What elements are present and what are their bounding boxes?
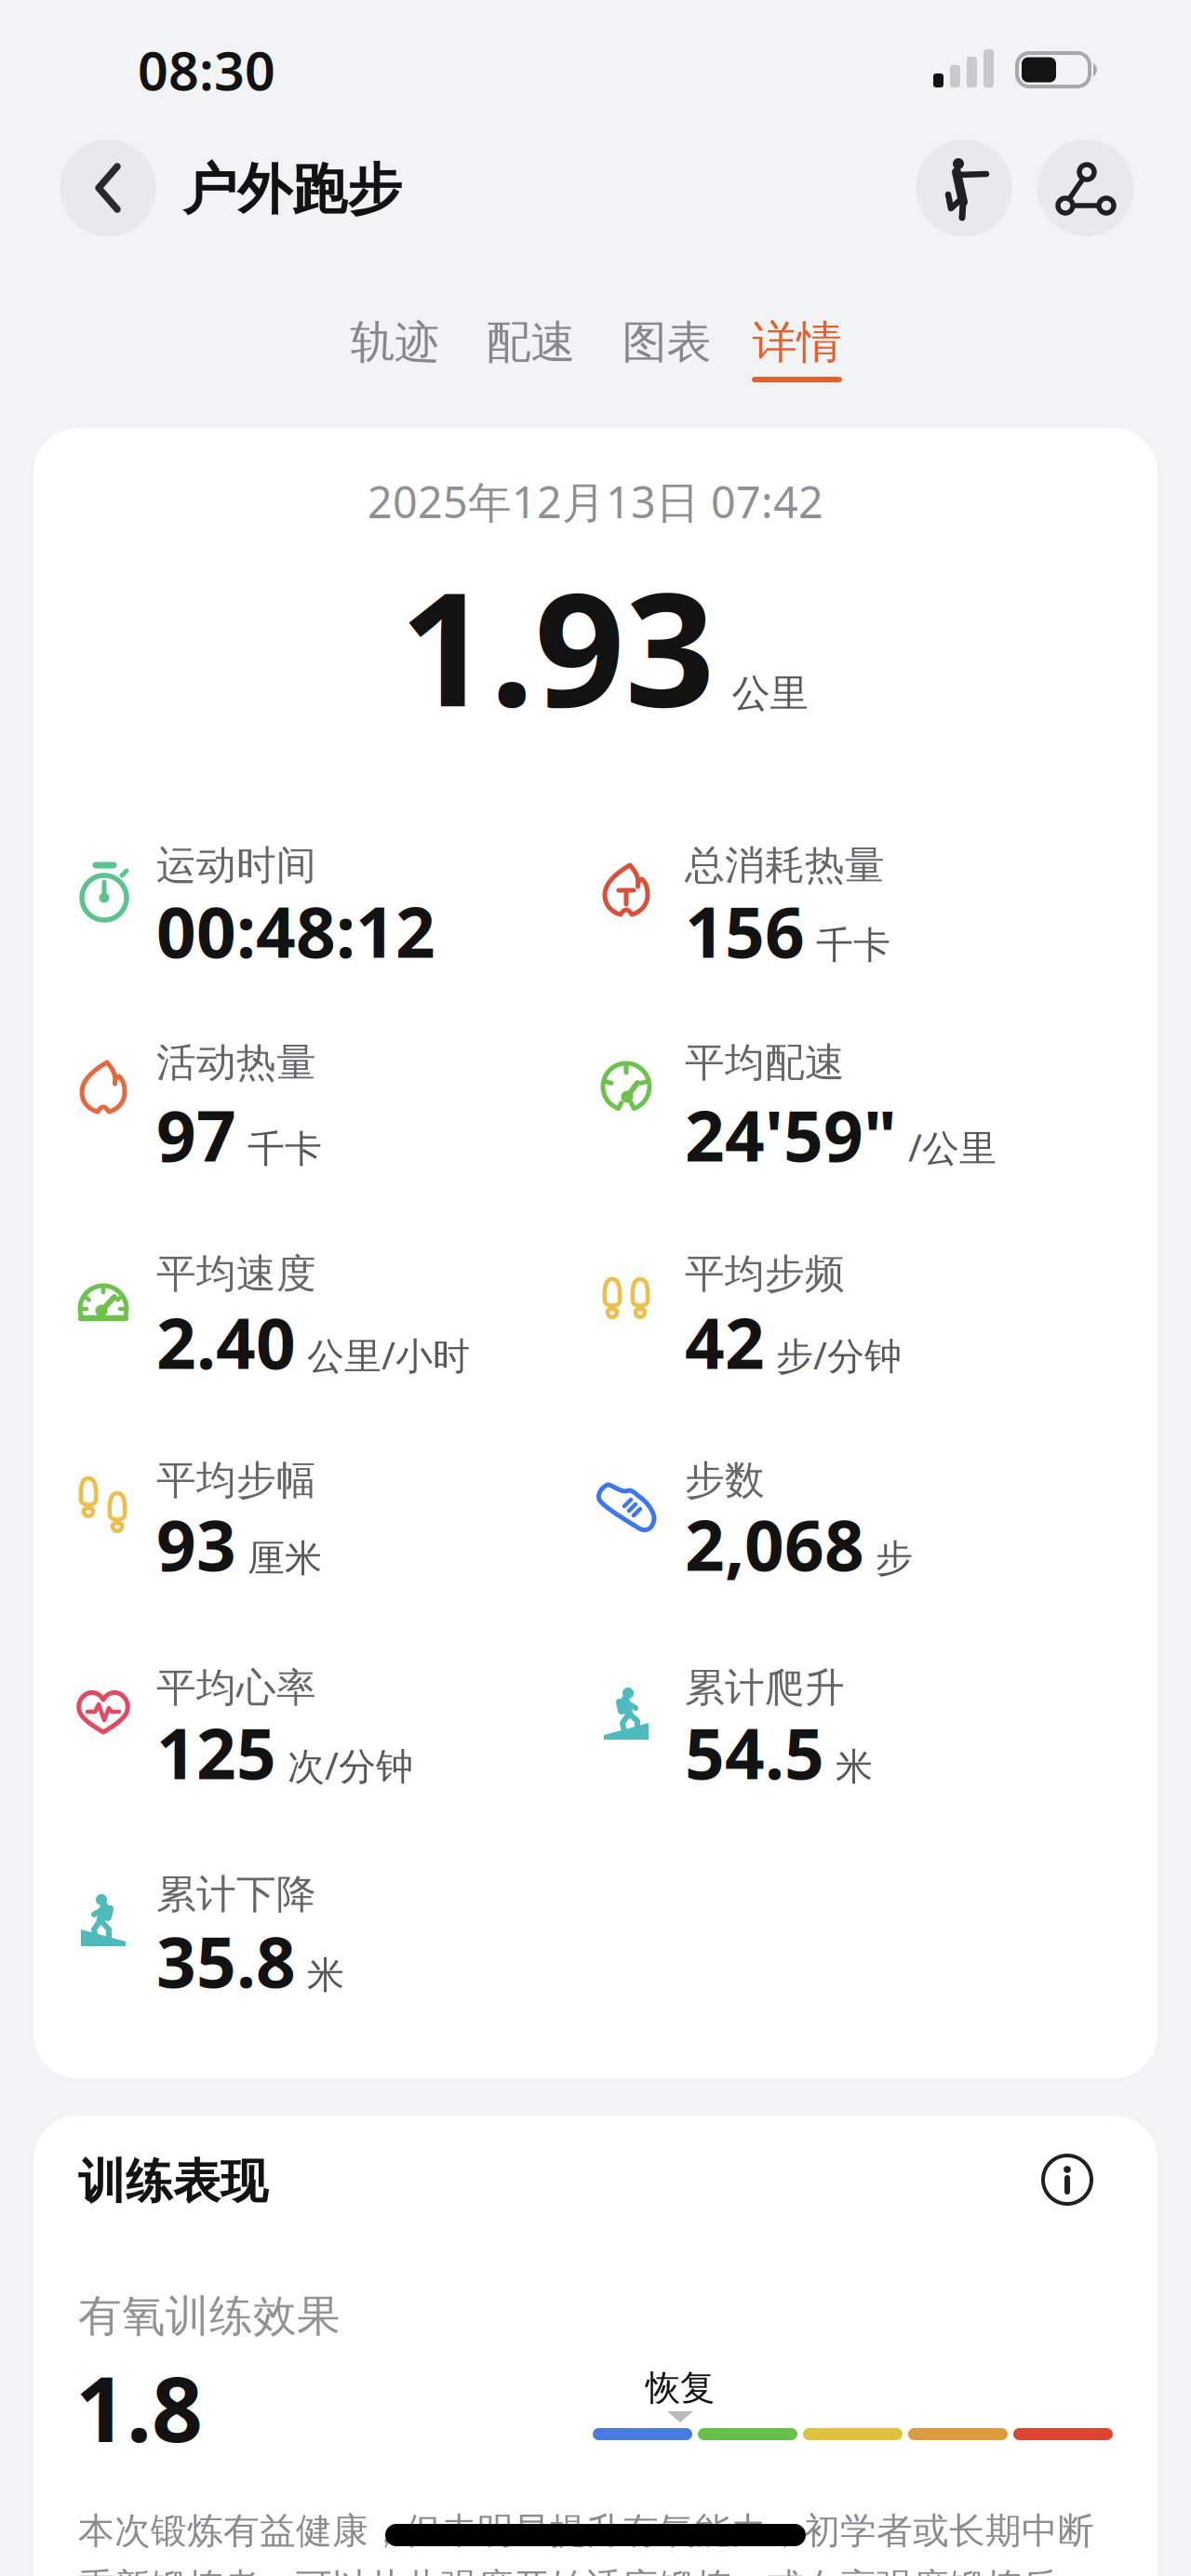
staticText: 详情 bbox=[752, 315, 842, 370]
staticText: 42 bbox=[685, 1296, 765, 1388]
staticText: 平均速度 bbox=[156, 1249, 316, 1298]
staticText: 1.8 bbox=[75, 2348, 203, 2467]
staticText: 训练表现 bbox=[78, 2153, 268, 2211]
staticText: 2025年12月13日 07:42 bbox=[368, 473, 823, 530]
staticText: 米 bbox=[307, 1952, 344, 1998]
button[interactable]: About training performance bbox=[1040, 2153, 1094, 2207]
staticText: 2.40 bbox=[156, 1296, 296, 1388]
staticText: 轨迹 bbox=[350, 315, 440, 370]
staticText: 配速 bbox=[486, 315, 575, 370]
staticText: 平均心率 bbox=[156, 1663, 316, 1712]
staticText: 平均配速 bbox=[685, 1038, 845, 1087]
staticText: 08:30 bbox=[138, 34, 275, 105]
staticText: 35.8 bbox=[156, 1915, 296, 2007]
staticText: 米 bbox=[836, 1744, 873, 1790]
staticText: 运动时间 bbox=[156, 841, 316, 890]
staticText: 步数 bbox=[685, 1456, 765, 1505]
button[interactable]: Route bbox=[1037, 140, 1134, 236]
staticText: 本次锻炼有益健康，但未明显提升有氧能力，初学者或长期中断 bbox=[78, 2509, 1094, 2553]
button[interactable]: 图表 bbox=[622, 307, 712, 378]
staticText: 平均步幅 bbox=[156, 1456, 316, 1505]
staticText: 公里/小时 bbox=[307, 1330, 470, 1380]
staticText: 平均步频 bbox=[685, 1249, 845, 1298]
staticText: 公里 bbox=[732, 670, 808, 717]
staticText: 累计爬升 bbox=[685, 1663, 845, 1712]
staticText: 户外跑步 bbox=[182, 156, 402, 223]
staticText: 总消耗热量 bbox=[685, 841, 885, 890]
staticText: 156 bbox=[685, 885, 805, 977]
button[interactable]: Back bbox=[60, 140, 156, 236]
staticText: 累计下降 bbox=[156, 1870, 316, 1919]
staticText: 厘米 bbox=[248, 1536, 322, 1581]
staticText: 恢复 bbox=[646, 2367, 715, 2409]
staticText: 1.93 bbox=[400, 541, 715, 750]
staticText: 97 bbox=[156, 1088, 236, 1181]
staticText: 活动热量 bbox=[156, 1038, 316, 1087]
button[interactable]: 配速 bbox=[486, 307, 576, 378]
staticText: 千卡 bbox=[248, 1126, 322, 1172]
staticText: 有氧训练效果 bbox=[78, 2289, 341, 2343]
staticText: 54.5 bbox=[685, 1706, 824, 1798]
staticText: 00:48:12 bbox=[156, 885, 435, 977]
staticText: 步 bbox=[876, 1536, 913, 1581]
staticText: 2,068 bbox=[685, 1498, 864, 1590]
staticText: 93 bbox=[156, 1498, 236, 1590]
button[interactable]: Warm-up exercises bbox=[916, 140, 1012, 236]
staticText: 步/分钟 bbox=[776, 1330, 902, 1380]
staticText: /公里 bbox=[908, 1122, 997, 1172]
button[interactable]: 轨迹 bbox=[350, 307, 440, 378]
staticText: 图表 bbox=[622, 315, 711, 370]
staticText: 次/分钟 bbox=[288, 1741, 413, 1790]
button[interactable]: 详情 bbox=[752, 307, 842, 378]
staticText: 千卡 bbox=[816, 923, 890, 968]
staticText: 24'59" bbox=[685, 1088, 897, 1181]
staticText: 125 bbox=[156, 1706, 276, 1798]
staticText: 重新锻炼者，可以从此强度开始适应锻炼，或在高强度锻炼后 bbox=[78, 2565, 1058, 2576]
